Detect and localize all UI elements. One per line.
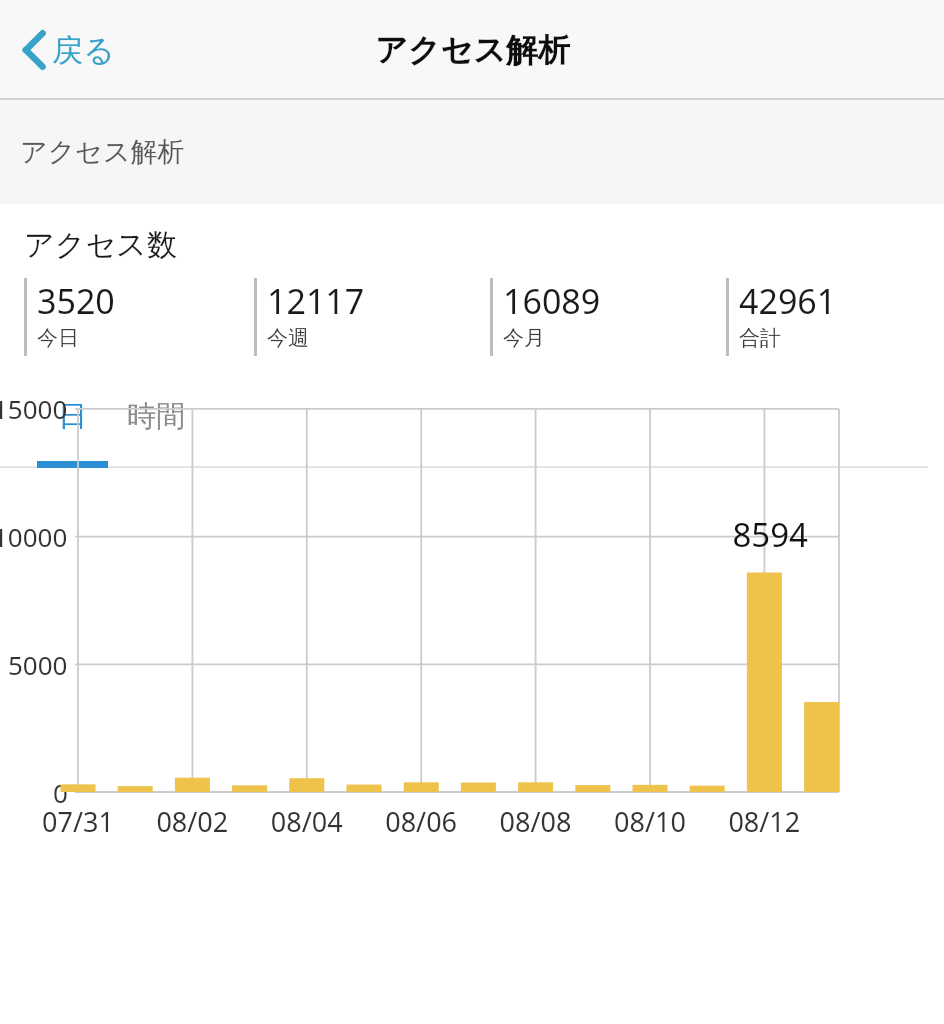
staticText: 3520 [37,278,115,324]
button[interactable]: 日 [36,398,108,450]
staticText: 合計 [739,325,781,351]
staticText: 今日 [37,325,79,351]
button[interactable]: Back [16,22,121,78]
staticText: アクセス解析 [20,135,185,169]
staticText: アクセス数 [24,226,177,264]
button[interactable]: 16089 [472,278,708,356]
other: Back [22,30,46,70]
staticText: 日 [58,398,87,435]
staticText: アクセス解析 [375,30,570,70]
staticText: 42961 [739,278,837,324]
staticText: 時間 [127,398,185,435]
staticText: 今週 [267,325,309,351]
staticText: 12117 [267,278,365,324]
button[interactable]: 時間 [108,398,204,450]
button[interactable]: 42961 [708,278,944,356]
staticText: 16089 [503,278,601,324]
button[interactable]: 12117 [236,278,472,356]
staticText: 戻る [52,31,115,70]
staticText: 今月 [503,325,545,351]
button[interactable]: 3520 [0,278,236,356]
